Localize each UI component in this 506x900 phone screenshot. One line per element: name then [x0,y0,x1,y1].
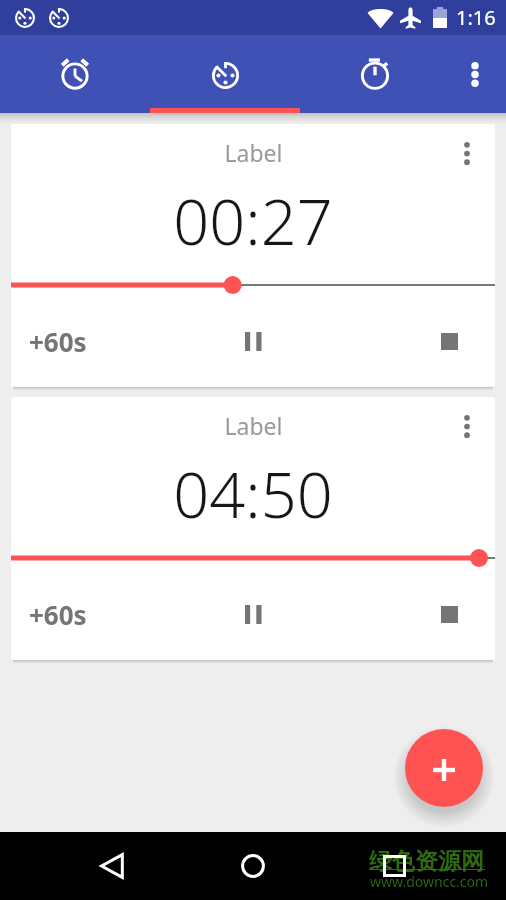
button[interactable]: Home [229,842,277,890]
button[interactable]: Label [224,410,283,441]
staticText: www.downcc.com [370,872,489,891]
button[interactable]: Timer [150,35,300,113]
button[interactable]: Back [88,842,136,890]
button[interactable]: Stopwatch [300,35,450,113]
staticText: 1:16 [456,4,496,31]
button[interactable]: Stop [401,571,495,657]
staticText: +60s [29,324,87,359]
button[interactable]: Timer options [445,404,489,448]
button[interactable]: Stop [401,298,495,384]
staticText: 04:50 [173,451,333,537]
button[interactable]: Timer options [445,131,489,175]
staticText: 00:27 [173,178,333,264]
button[interactable]: +60s [11,298,151,384]
button[interactable]: Add timer [405,729,483,807]
button[interactable]: Alarm [0,35,150,113]
button[interactable]: Recents [370,842,418,890]
button[interactable]: Pause [205,298,301,384]
button[interactable]: +60s [11,571,151,657]
button[interactable]: Pause [205,571,301,657]
button[interactable]: Label [224,137,283,168]
button[interactable]: More options [450,35,506,113]
staticText: +60s [29,597,87,632]
staticText: 绿色资源网 [369,847,484,876]
